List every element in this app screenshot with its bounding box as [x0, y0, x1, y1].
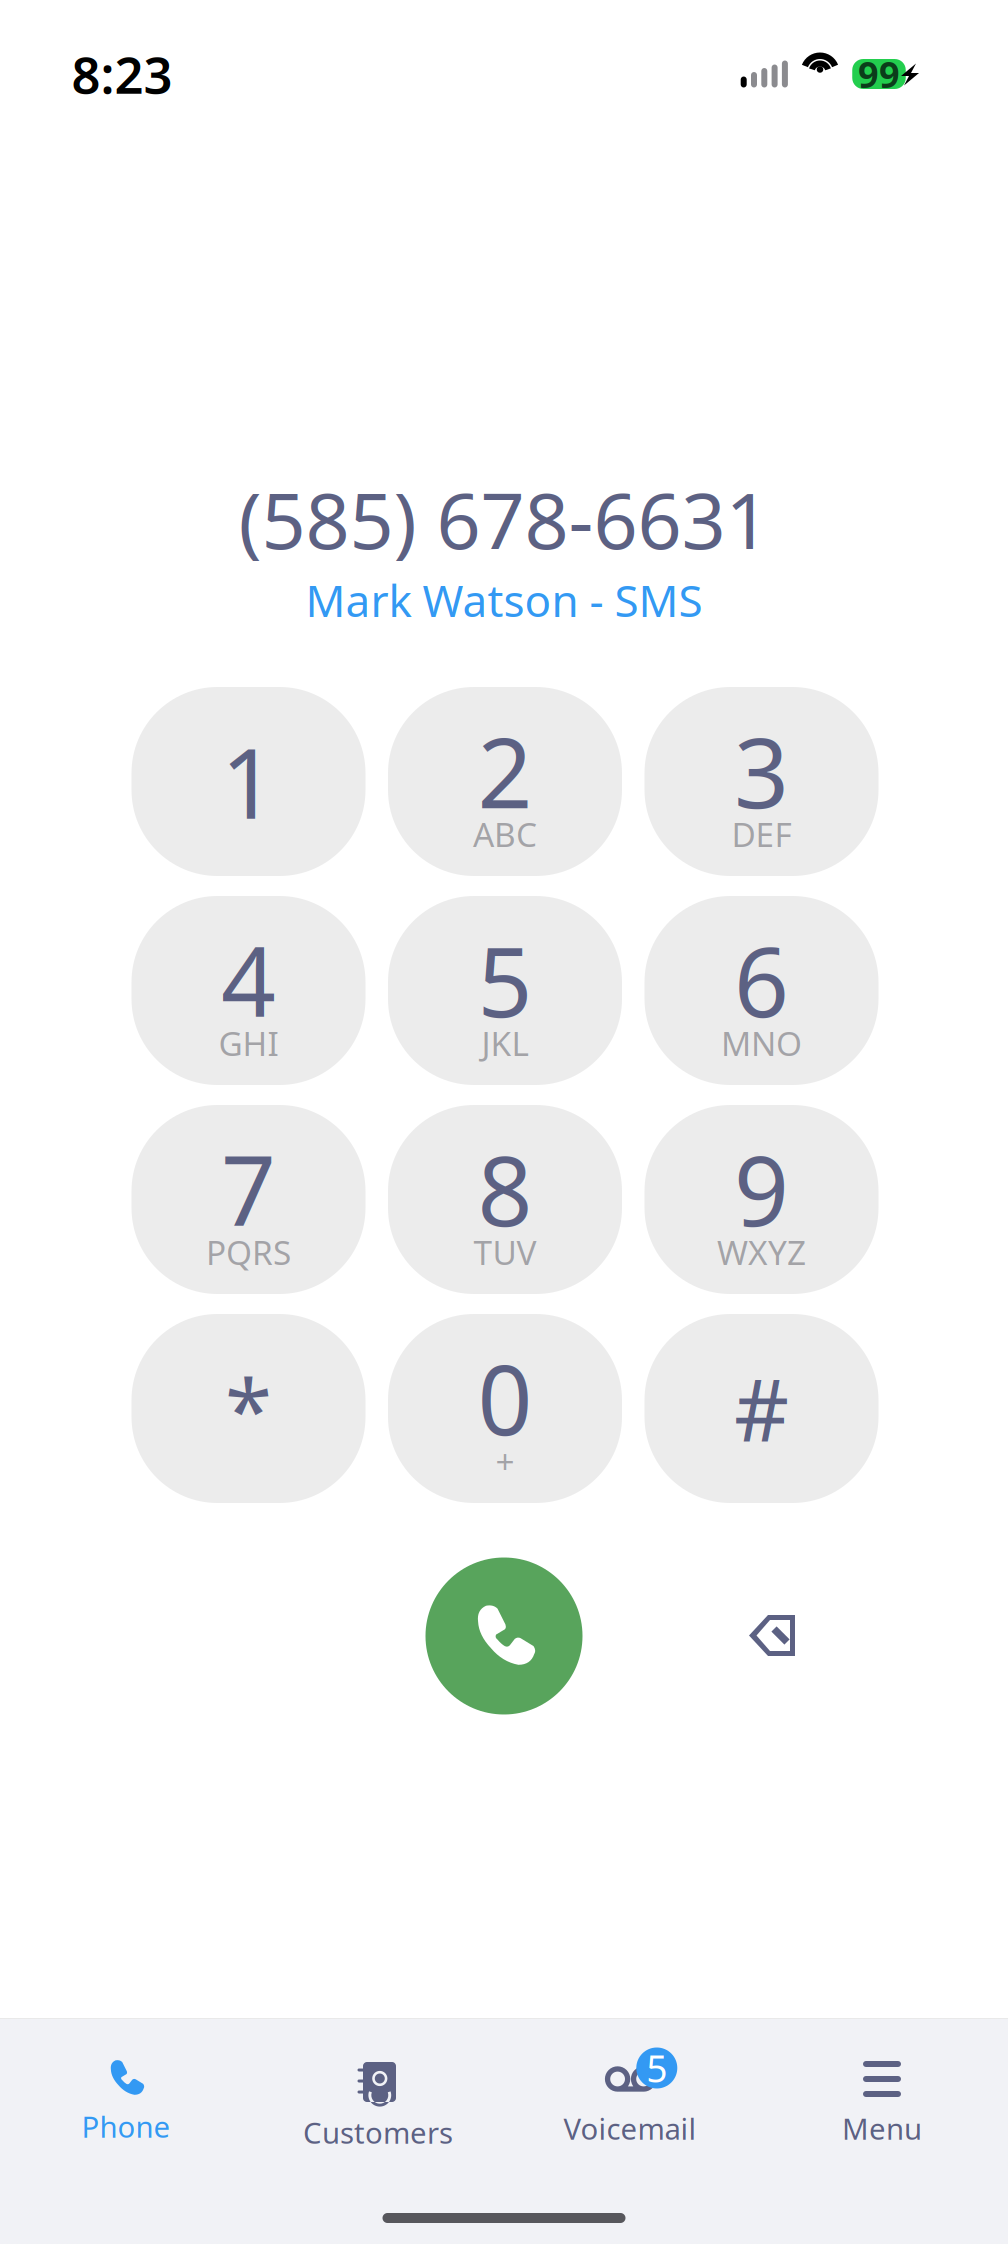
button[interactable]: Phone: [0, 2019, 252, 2244]
button[interactable]: 0: [388, 1314, 622, 1503]
staticText: Mark Watson - SMS: [305, 571, 702, 629]
staticText: 4: [221, 916, 276, 1044]
button[interactable]: Call: [425, 1557, 582, 1714]
staticText: JKL: [481, 1021, 528, 1065]
button[interactable]: 3: [644, 687, 878, 876]
staticText: 99: [858, 50, 900, 98]
button[interactable]: 4: [131, 896, 365, 1085]
staticText: TUV: [473, 1230, 536, 1274]
button[interactable]: 1: [131, 687, 365, 876]
button[interactable]: 2: [388, 687, 622, 876]
staticText: #: [734, 1352, 789, 1465]
button[interactable]: Voicemail: [504, 2019, 756, 2244]
button[interactable]: Menu: [756, 2019, 1008, 2244]
staticText: 9: [734, 1125, 789, 1253]
staticText: 0: [477, 1334, 532, 1462]
staticText: 6: [734, 916, 789, 1044]
button[interactable]: 9: [644, 1105, 878, 1294]
staticText: GHI: [218, 1021, 278, 1065]
staticText: 8:23: [71, 40, 172, 108]
staticText: 7: [221, 1125, 276, 1253]
staticText: 8: [477, 1125, 532, 1253]
button[interactable]: 5: [388, 896, 622, 1085]
button[interactable]: 6: [644, 896, 878, 1085]
staticText: PQRS: [206, 1230, 291, 1274]
button[interactable]: Customers: [252, 2019, 504, 2244]
staticText: (585) 678-6631: [238, 468, 769, 570]
staticText: 5: [477, 916, 532, 1044]
staticText: 1: [221, 718, 276, 845]
staticText: 5: [646, 2043, 667, 2093]
staticText: ABC: [473, 812, 537, 856]
button[interactable]: *: [131, 1314, 365, 1503]
button[interactable]: Delete: [718, 1581, 828, 1691]
staticText: 3: [734, 707, 789, 835]
staticText: Voicemail: [563, 2109, 696, 2148]
staticText: Phone: [81, 2107, 170, 2146]
staticText: 2: [477, 707, 532, 835]
staticText: Customers: [303, 2113, 453, 2152]
staticText: WXYZ: [717, 1230, 806, 1274]
staticText: Menu: [842, 2109, 922, 2148]
button[interactable]: 8: [388, 1105, 622, 1294]
button[interactable]: #: [644, 1314, 878, 1503]
staticText: *: [225, 1352, 272, 1465]
staticText: +: [495, 1439, 514, 1483]
staticText: DEF: [731, 812, 791, 856]
button[interactable]: 7: [131, 1105, 365, 1294]
staticText: MNO: [721, 1021, 802, 1065]
button[interactable]: Mark Watson - SMS: [305, 573, 702, 627]
